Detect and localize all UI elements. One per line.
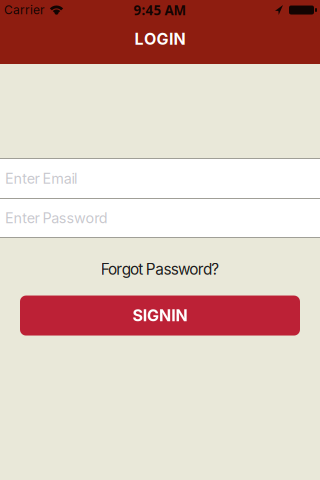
staticText: Forgot Password? [101,260,219,279]
button[interactable]: Forgot Password? [101,260,219,279]
staticText: Enter Email [5,170,77,187]
staticText: 9:45 AM [133,1,186,19]
button[interactable]: SIGNIN [20,296,300,336]
staticText: Enter Password [5,209,108,227]
staticText: Carrier [4,3,45,17]
staticText: SIGNIN [132,306,187,325]
staticText: LOGIN [134,30,185,48]
